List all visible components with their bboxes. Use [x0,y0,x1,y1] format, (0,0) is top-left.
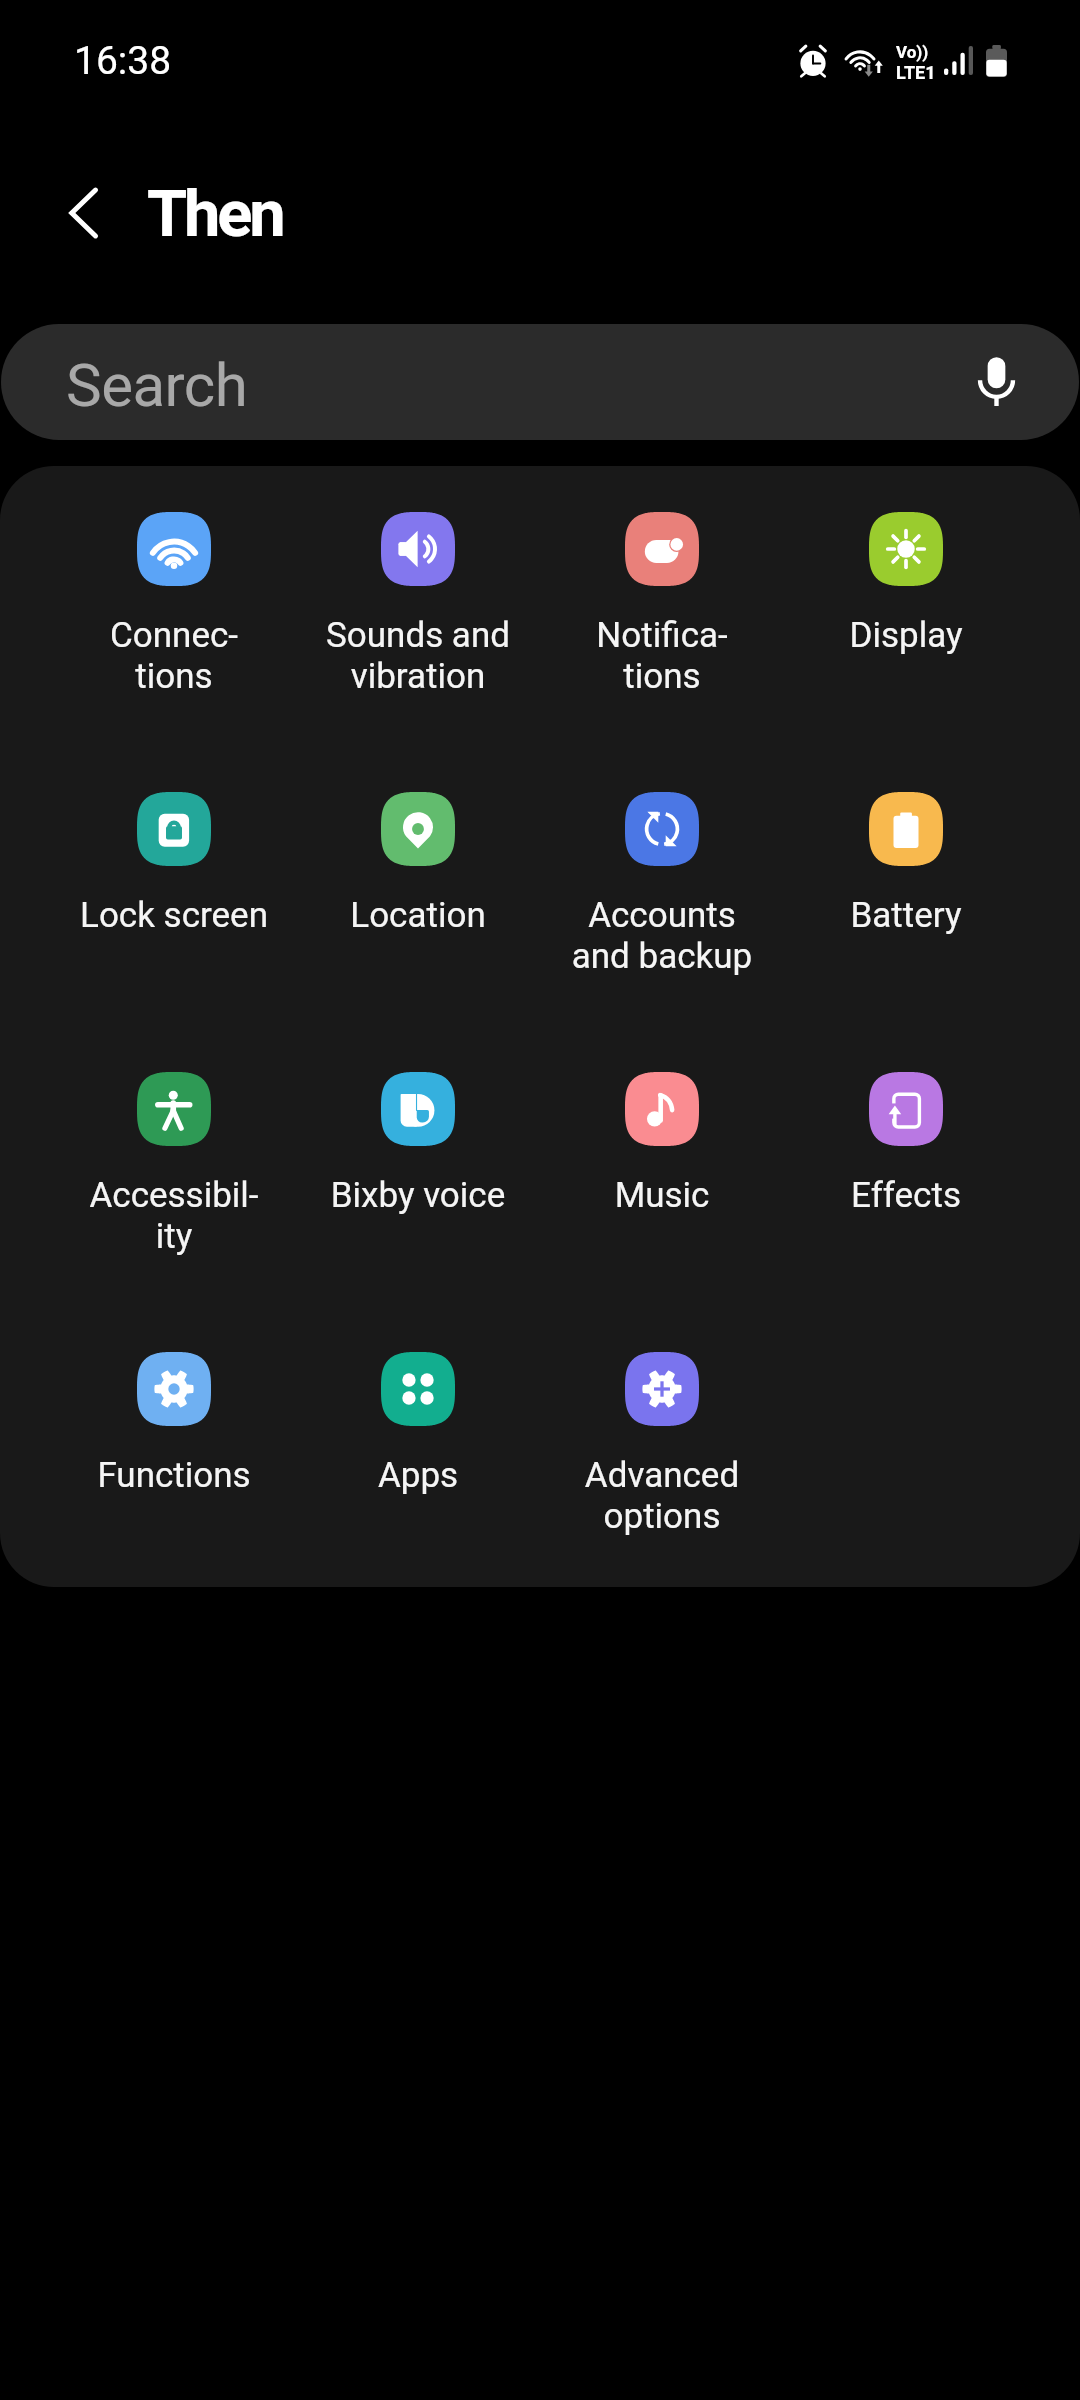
button[interactable]: Music [544,1072,780,1216]
button[interactable]: Lock screen [56,792,292,936]
button[interactable]: Voice search [964,350,1028,414]
button[interactable]: Bixby voice [300,1072,536,1216]
staticText: Notifica- tions [544,615,780,697]
staticText: Search [66,350,248,420]
button[interactable]: Accounts and backup [544,792,780,977]
button[interactable]: Location [300,792,536,936]
button[interactable]: Accessibil- ity [56,1072,292,1257]
staticText: Lock screen [56,895,292,936]
staticText: Location [300,895,536,936]
staticText: Sounds and vibration [300,615,536,697]
staticText: LTE1 [896,62,936,83]
staticText: Battery [788,895,1024,936]
staticText: Advanced options [544,1455,780,1537]
staticText: Functions [56,1455,292,1496]
staticText: Accounts and backup [544,895,780,977]
button[interactable]: Advanced options [544,1352,780,1537]
staticText: Then [147,176,283,252]
button[interactable]: Battery [788,792,1024,936]
staticText: Effects [788,1175,1024,1216]
staticText: Display [788,615,1024,656]
button[interactable]: Functions [56,1352,292,1496]
staticText: 16:38 [74,38,172,84]
button[interactable]: Apps [300,1352,536,1496]
button[interactable]: Search [1,324,1079,440]
staticText: Connec- tions [56,615,292,697]
button[interactable]: Connec- tions [56,512,292,697]
staticText: Apps [300,1455,536,1496]
button[interactable]: Back [44,172,126,254]
button[interactable]: Notifica- tions [544,512,780,697]
staticText: Accessibil- ity [56,1175,292,1257]
button[interactable]: Effects [788,1072,1024,1216]
staticText: Vo)) [896,42,929,62]
button[interactable]: Sounds and vibration [300,512,536,697]
button[interactable]: Display [788,512,1024,656]
staticText: Bixby voice [300,1175,536,1216]
staticText: Music [544,1175,780,1216]
